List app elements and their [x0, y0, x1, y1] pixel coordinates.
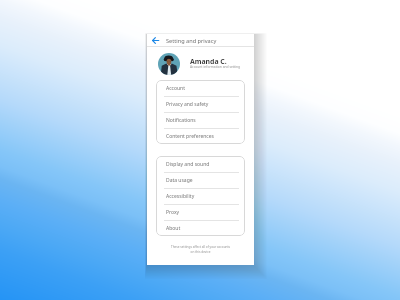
staticText: Accessibility	[166, 193, 195, 200]
button[interactable]: Amanda C.	[147, 47, 254, 81]
button[interactable]: Back	[147, 34, 163, 47]
button[interactable]: About	[156, 220, 245, 236]
staticText: These settings affect all of your accoun…	[147, 245, 254, 254]
staticText: Setting and privacy	[166, 37, 217, 45]
staticText: Display and sound	[166, 161, 210, 168]
button[interactable]: Content preferences	[156, 128, 245, 144]
staticText: Content preferences	[166, 133, 214, 140]
button[interactable]: Accessibility	[156, 188, 245, 204]
staticText: Notifications	[166, 117, 196, 124]
staticText: Privacy and safety	[166, 101, 209, 108]
button[interactable]: Display and sound	[156, 156, 245, 172]
button[interactable]: Data usage	[156, 172, 245, 188]
staticText: Proxy	[166, 209, 180, 216]
staticText: Amanda C.	[190, 57, 227, 66]
staticText: About	[166, 225, 181, 232]
button[interactable]: Account	[156, 80, 245, 96]
staticText: Data usage	[166, 177, 193, 184]
staticText: Account	[166, 85, 186, 92]
button[interactable]: Privacy and safety	[156, 96, 245, 112]
button[interactable]: Proxy	[156, 204, 245, 220]
button[interactable]: Notifications	[156, 112, 245, 128]
staticText: Account information and setting	[190, 64, 241, 68]
